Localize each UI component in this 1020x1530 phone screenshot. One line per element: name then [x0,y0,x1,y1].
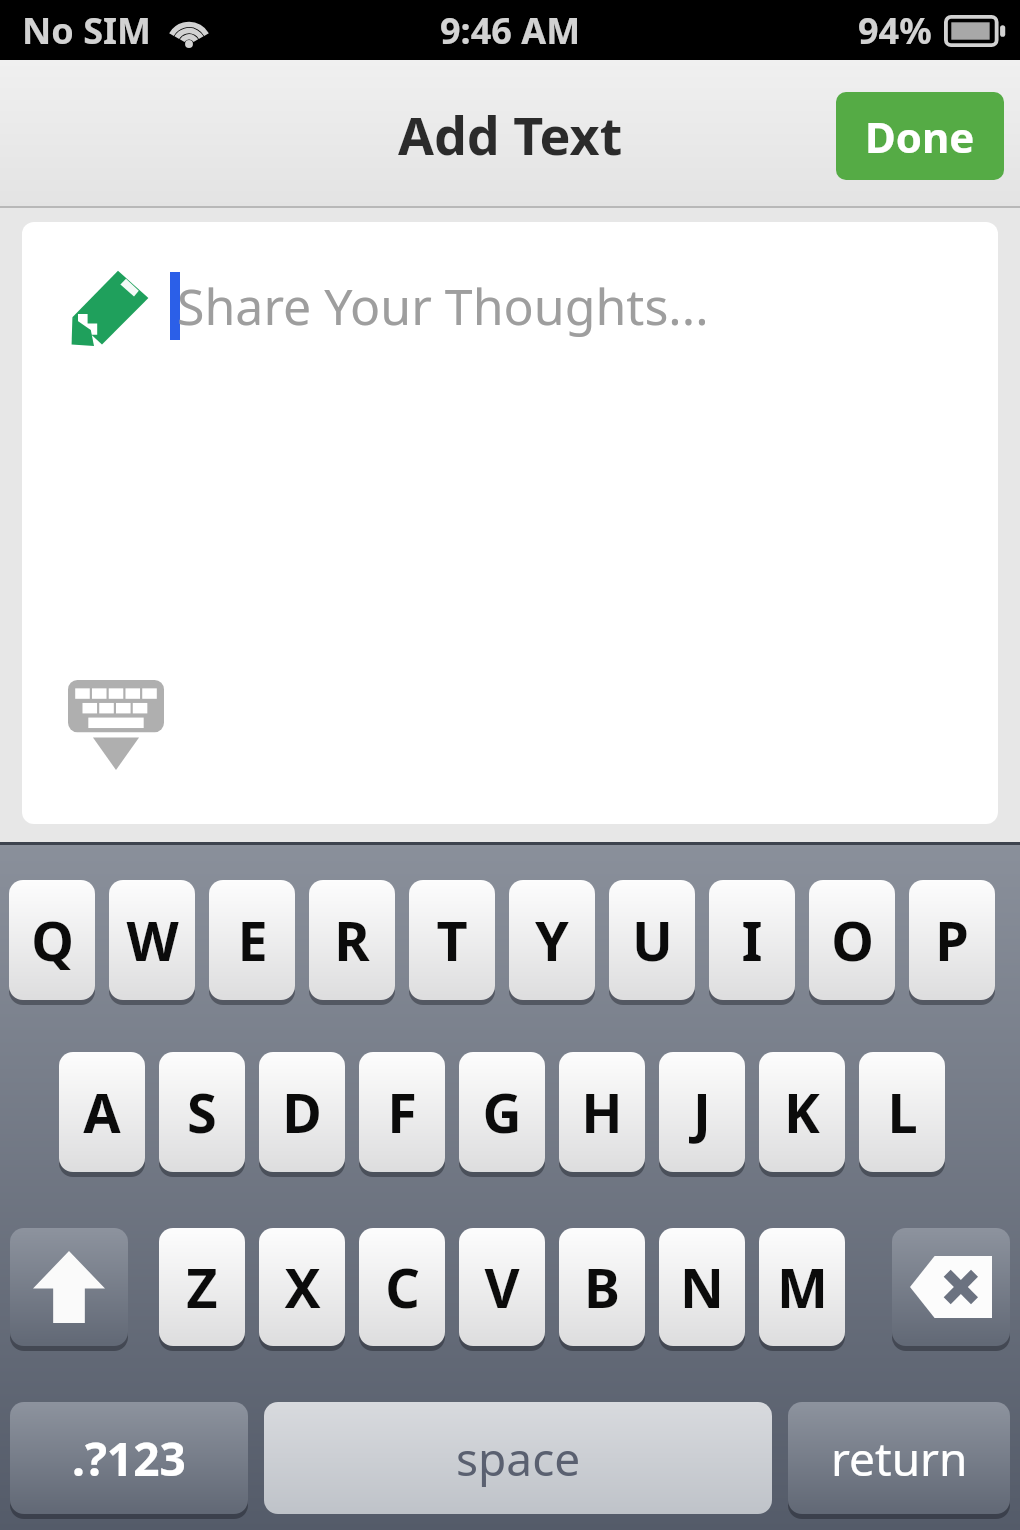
button[interactable]: X [259,1228,345,1346]
staticText: Share Your Thoughts... [177,272,709,340]
button[interactable]: R [309,880,395,1000]
button[interactable]: C [359,1228,445,1346]
staticText: R [334,903,370,977]
staticText: T [436,903,468,977]
button[interactable]: A [59,1052,145,1172]
button[interactable]: S [159,1052,245,1172]
button[interactable]: K [759,1052,845,1172]
button[interactable]: F [359,1052,445,1172]
staticText: L [887,1075,918,1149]
staticText: space [456,1427,581,1490]
button[interactable]: Q [9,880,95,1000]
button[interactable]: N [659,1228,745,1346]
staticText: D [282,1075,322,1149]
button[interactable]: U [609,880,695,1000]
staticText: N [680,1250,724,1324]
button[interactable]: D [259,1052,345,1172]
staticText: E [237,903,268,977]
staticText: 94% [858,6,932,55]
staticText: K [784,1075,820,1149]
staticText: I [741,903,763,977]
staticText: F [387,1075,417,1149]
staticText: J [693,1075,711,1149]
button[interactable]: E [209,880,295,1000]
staticText: M [777,1250,828,1324]
staticText: B [584,1250,620,1324]
staticText: return [831,1427,968,1490]
button[interactable]: return [788,1402,1010,1514]
staticText: No SIM [22,6,151,55]
button[interactable]: B [559,1228,645,1346]
button[interactable]: O [809,880,895,1000]
button[interactable]: Y [509,880,595,1000]
button[interactable]: M [759,1228,845,1346]
button[interactable]: Backspace [892,1228,1010,1346]
button[interactable]: L [859,1052,945,1172]
button[interactable]: Done [836,92,1004,180]
button[interactable]: Hide keyboard [68,680,168,776]
staticText: 9:46 AM [440,6,581,55]
staticText: Z [186,1250,218,1324]
button[interactable]: Share Your Thoughts... [22,222,998,824]
staticText: S [187,1075,217,1149]
staticText: W [126,903,179,977]
staticText: O [831,903,874,977]
staticText: G [482,1075,522,1149]
button[interactable]: G [459,1052,545,1172]
button[interactable]: J [659,1052,745,1172]
staticText: Q [31,903,74,977]
staticText: V [484,1250,520,1324]
staticText: A [83,1075,121,1149]
button[interactable]: P [909,880,995,1000]
staticText: Done [865,108,975,165]
button[interactable]: T [409,880,495,1000]
button[interactable]: I [709,880,795,1000]
staticText: U [632,903,673,977]
staticText: Y [535,903,569,977]
button[interactable]: Z [159,1228,245,1346]
staticText: C [385,1250,420,1324]
button[interactable]: H [559,1052,645,1172]
button[interactable]: Shift [10,1228,128,1346]
staticText: X [284,1250,321,1324]
button[interactable]: space [264,1402,772,1514]
button[interactable]: V [459,1228,545,1346]
button[interactable]: .?123 [10,1402,248,1514]
staticText: H [581,1075,623,1149]
staticText: P [935,903,969,977]
staticText: .?123 [72,1427,186,1490]
button[interactable]: W [109,880,195,1000]
staticText: Add Text [398,99,623,170]
